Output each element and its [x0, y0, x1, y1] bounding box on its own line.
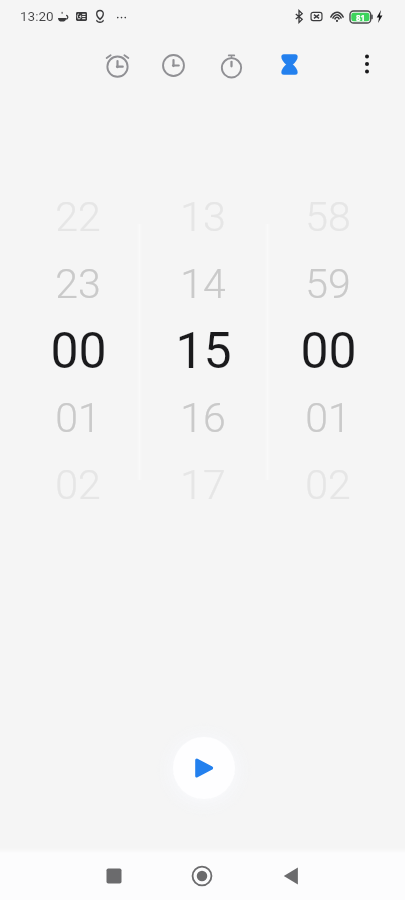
staticText: 02	[55, 461, 101, 509]
button[interactable]: 00	[268, 319, 388, 383]
button[interactable]: 01	[268, 386, 388, 450]
button[interactable]: 59	[268, 252, 388, 316]
staticText: 00	[50, 322, 107, 381]
button[interactable]: World clock	[155, 47, 191, 83]
staticText: 15	[175, 322, 232, 381]
button[interactable]: 58	[268, 185, 388, 249]
button[interactable]: Start timer	[173, 737, 235, 799]
button[interactable]: Alarm	[99, 47, 135, 83]
button[interactable]: Recents	[92, 854, 136, 898]
button[interactable]: Back	[269, 854, 313, 898]
staticText: 81	[356, 12, 366, 23]
button[interactable]: 15	[143, 319, 263, 383]
button[interactable]: 23	[18, 252, 138, 316]
staticText: 13	[180, 193, 226, 241]
staticText: 17	[180, 461, 226, 509]
staticText: 23	[55, 260, 101, 308]
staticText: 13:20	[20, 8, 54, 24]
button[interactable]: Home	[180, 854, 224, 898]
staticText: 01	[55, 394, 101, 442]
button[interactable]: Timer	[271, 46, 307, 82]
button[interactable]: 16	[143, 386, 263, 450]
button[interactable]: Stopwatch	[213, 47, 249, 83]
staticText: 16	[180, 394, 226, 442]
staticText: 00	[300, 322, 357, 381]
button[interactable]: 00	[18, 319, 138, 383]
button[interactable]: 14	[143, 252, 263, 316]
staticText: 59	[305, 260, 351, 308]
staticText: 01	[305, 394, 351, 442]
staticText: 02	[305, 461, 351, 509]
staticText: 22	[55, 193, 101, 241]
staticText: 14	[180, 260, 226, 308]
staticText: 58	[305, 193, 351, 241]
button[interactable]: More options	[349, 46, 385, 82]
button[interactable]: 01	[18, 386, 138, 450]
